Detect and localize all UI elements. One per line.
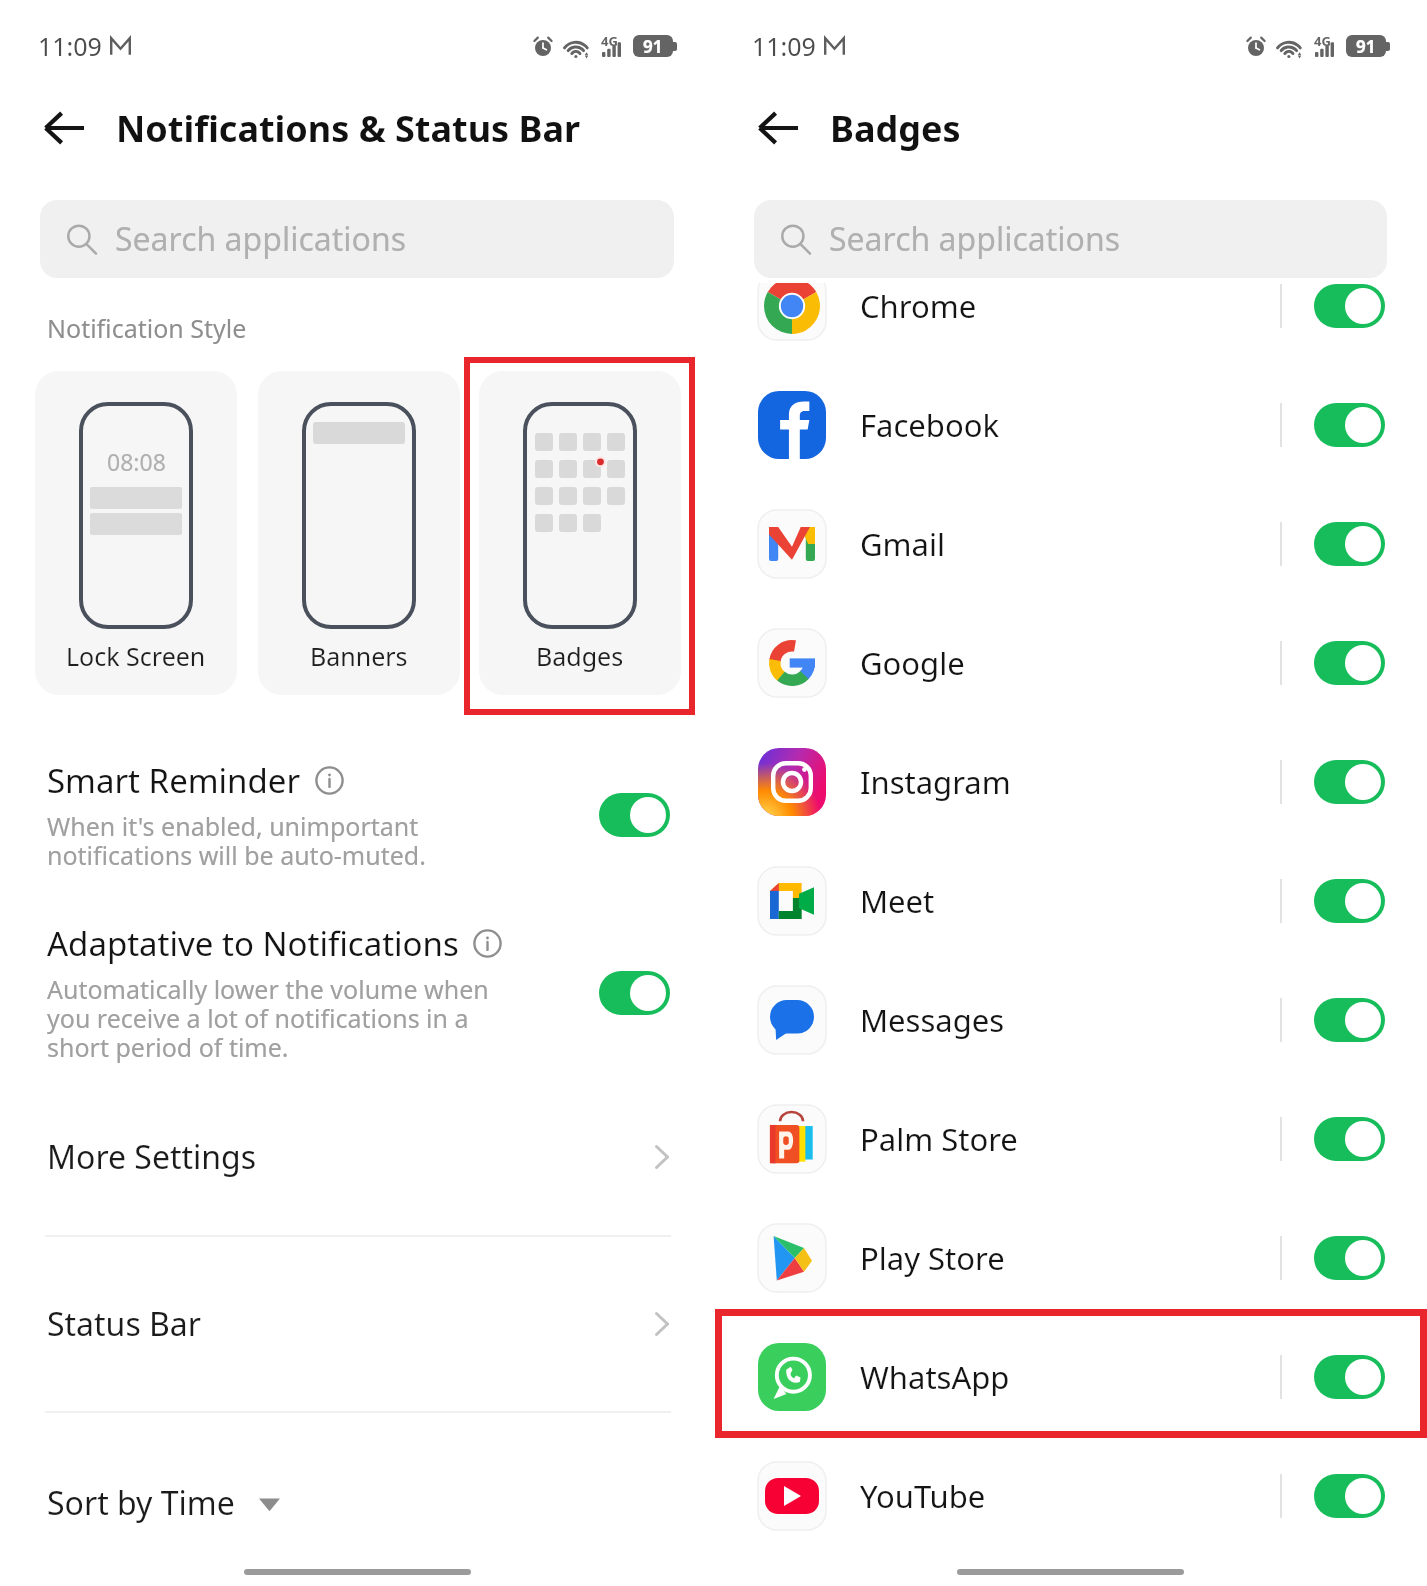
staticText: Badges <box>830 104 961 153</box>
staticText: Status Bar <box>47 1302 202 1346</box>
button[interactable]: Toggle badges for Palm Store <box>1314 1117 1385 1161</box>
button[interactable]: Search applications <box>40 200 674 278</box>
staticText: Play Store <box>860 1237 1005 1279</box>
staticText: Notification Style <box>47 311 247 345</box>
staticText: Messages <box>860 999 1005 1041</box>
button[interactable]: Toggle Smart Reminder <box>599 793 670 837</box>
button[interactable]: Gmail <box>714 485 1427 603</box>
button[interactable]: Toggle badges for Instagram <box>1314 760 1385 804</box>
staticText: Facebook <box>860 404 999 446</box>
button[interactable]: Toggle badges for Play Store <box>1314 1236 1385 1280</box>
staticText: Smart Reminder <box>47 758 301 803</box>
staticText: Notifications & Status Bar <box>116 104 581 153</box>
button[interactable]: Toggle badges for Messages <box>1314 998 1385 1042</box>
button[interactable]: Play Store <box>714 1199 1427 1317</box>
button[interactable]: Toggle badges for Facebook <box>1314 403 1385 447</box>
button[interactable]: Toggle badges for YouTube <box>1314 1474 1385 1518</box>
button[interactable]: Meet <box>714 842 1427 960</box>
button[interactable]: 08:08 <box>35 371 237 695</box>
button[interactable]: YouTube <box>714 1437 1427 1555</box>
button[interactable]: Toggle badges for WhatsApp <box>1314 1355 1385 1399</box>
button[interactable]: Toggle badges for Google <box>1314 641 1385 685</box>
staticText: Chrome <box>860 285 977 327</box>
staticText: Search applications <box>829 217 1121 261</box>
staticText: Adaptative to Notifications <box>47 921 459 966</box>
staticText: 11:09 <box>752 29 816 63</box>
button[interactable]: Google <box>714 604 1427 722</box>
staticText: Banners <box>310 639 408 673</box>
staticText: When it's enabled, unimportant notificat… <box>47 809 426 872</box>
staticText: 08:08 <box>107 446 166 477</box>
staticText: 4G <box>601 32 618 50</box>
button[interactable]: Status Bar <box>0 1288 714 1360</box>
staticText: Search applications <box>115 217 407 261</box>
staticText: Palm Store <box>860 1118 1018 1160</box>
staticText: Badges <box>536 639 624 673</box>
button[interactable]: Chrome <box>714 247 1427 365</box>
button[interactable]: Toggle badges for Meet <box>1314 879 1385 923</box>
button[interactable]: WhatsApp <box>714 1318 1427 1436</box>
button[interactable]: Messages <box>714 961 1427 1079</box>
staticText: Lock Screen <box>66 639 206 673</box>
staticText: More Settings <box>47 1135 257 1179</box>
button[interactable]: Toggle badges for Gmail <box>1314 522 1385 566</box>
staticText: WhatsApp <box>860 1356 1010 1398</box>
button[interactable]: Back <box>752 100 804 156</box>
button[interactable]: Adaptative to Notifications <box>0 921 714 1064</box>
button[interactable]: Facebook <box>714 366 1427 484</box>
button[interactable]: Sort by Time <box>47 1475 288 1531</box>
staticText: Automatically lower the volume when you … <box>47 972 489 1064</box>
staticText: Meet <box>860 880 935 922</box>
staticText: Instagram <box>860 761 1011 803</box>
button[interactable]: Back <box>38 100 90 156</box>
staticText: 91 <box>643 35 663 57</box>
button[interactable]: Badges <box>479 371 681 695</box>
staticText: 91 <box>1356 35 1376 57</box>
staticText: Gmail <box>860 523 945 565</box>
button[interactable]: Palm Store <box>714 1080 1427 1198</box>
button[interactable]: More Settings <box>0 1121 714 1193</box>
staticText: 4G <box>1314 32 1331 50</box>
staticText: Sort by Time <box>47 1481 235 1525</box>
staticText: 11:09 <box>38 29 102 63</box>
button[interactable]: Toggle badges for Chrome <box>1314 284 1385 328</box>
staticText: YouTube <box>860 1475 986 1517</box>
button[interactable]: Search applications <box>754 200 1387 278</box>
staticText: Google <box>860 642 965 684</box>
button[interactable]: Instagram <box>714 723 1427 841</box>
button[interactable]: Toggle Adaptative to Notifications <box>599 971 670 1015</box>
button[interactable]: Smart Reminder <box>0 758 714 872</box>
button[interactable]: Banners <box>258 371 460 695</box>
